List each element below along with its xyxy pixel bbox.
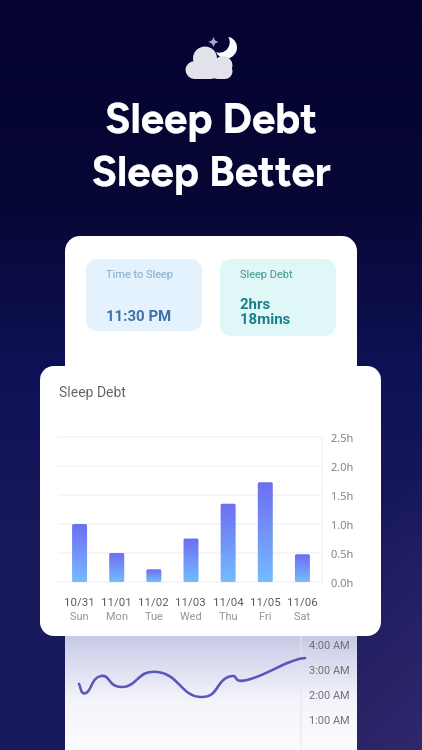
staticText: Wed	[180, 610, 202, 623]
staticText: Fri	[259, 610, 272, 623]
staticText: 11/05	[250, 595, 281, 608]
staticText: 0.0h	[331, 575, 354, 590]
staticText: 11/02	[138, 595, 169, 608]
staticText: 11/06	[287, 595, 318, 608]
staticText: Tue	[145, 610, 163, 623]
staticText: Sleep Debt	[59, 384, 126, 400]
staticText: Thu	[219, 610, 238, 623]
staticText: 1.0h	[331, 517, 354, 532]
button[interactable]: Sleep Debt	[220, 259, 336, 336]
staticText: 1:00 AM	[309, 714, 350, 727]
staticText: 11:30 PM	[106, 307, 172, 325]
staticText: Time to Sleep	[106, 268, 173, 281]
button[interactable]: Time to Sleep	[86, 259, 202, 331]
staticText: Sun	[70, 610, 89, 623]
staticText: 2.5h	[331, 430, 354, 445]
staticText: 2:00 AM	[309, 689, 350, 702]
staticText: Sleep Debt	[240, 268, 293, 281]
staticText: 11/03	[175, 595, 206, 608]
staticText: Mon	[106, 610, 128, 623]
staticText: 2.0h	[331, 459, 354, 474]
staticText: 1.5h	[331, 488, 354, 503]
other: Sleep	[184, 34, 238, 80]
staticText: 11/01	[101, 595, 132, 608]
staticText: Sleep Debt Sleep Better	[0, 93, 422, 196]
staticText: 3:00 AM	[309, 664, 350, 677]
staticText: Sat	[294, 610, 311, 623]
staticText: 10/31	[64, 595, 95, 608]
staticText: 4:00 AM	[309, 639, 350, 652]
staticText: 11/04	[213, 595, 244, 608]
staticText: 0.5h	[331, 546, 354, 561]
staticText: 2hrs 18mins	[240, 295, 291, 328]
